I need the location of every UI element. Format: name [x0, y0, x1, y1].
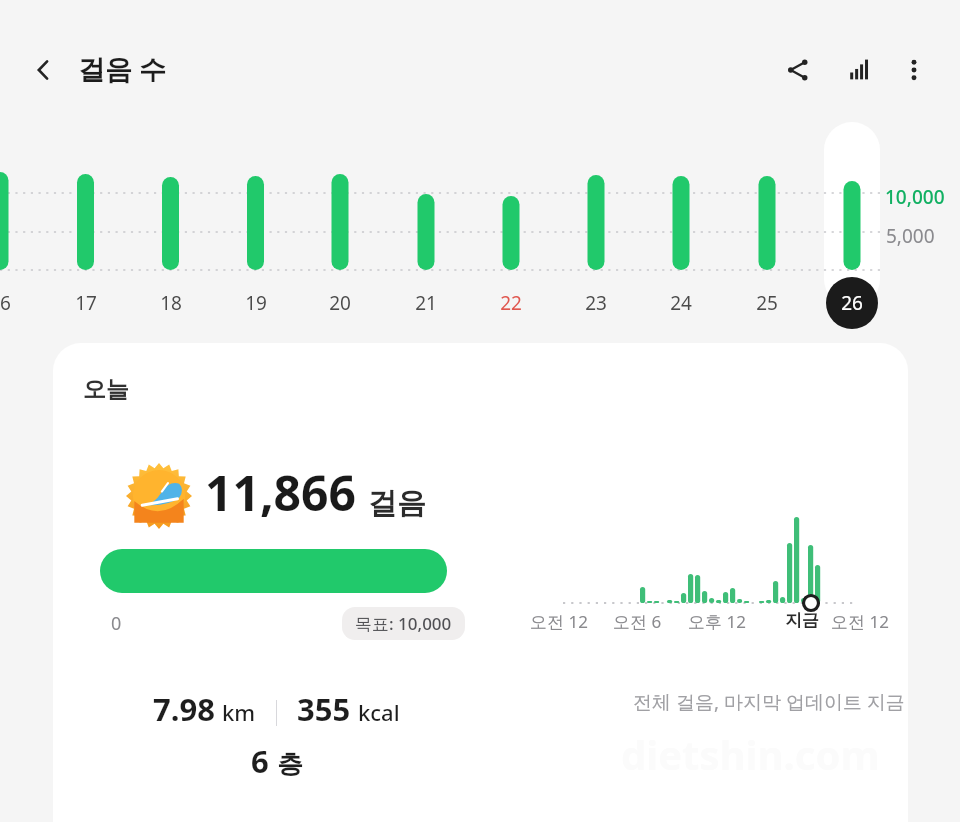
staticText: 21	[415, 290, 437, 316]
staticText: 오후 12	[688, 610, 746, 633]
button[interactable]: 19	[226, 289, 286, 317]
button[interactable]: Chart	[832, 44, 884, 96]
staticText: 오전 12	[530, 610, 588, 633]
button[interactable]: 20	[310, 289, 370, 317]
button[interactable]: 17	[56, 289, 116, 317]
staticText: 오늘	[83, 375, 129, 404]
button[interactable]: 25	[737, 289, 797, 317]
staticText: 걸음	[368, 485, 426, 522]
button[interactable]: 16	[0, 289, 30, 317]
staticText: 오전 12	[831, 610, 889, 633]
staticText: 24	[670, 290, 692, 316]
staticText: 5,000	[886, 223, 935, 249]
button[interactable]: Share	[772, 44, 824, 96]
staticText: 7.98	[153, 688, 215, 730]
staticText: 22	[500, 290, 522, 316]
staticText: 11,866	[205, 460, 356, 525]
button[interactable]: 18	[141, 289, 201, 317]
staticText: 23	[585, 290, 607, 316]
button[interactable]: 오늘	[53, 343, 908, 822]
staticText: 0	[111, 611, 122, 636]
staticText: 6	[251, 740, 269, 782]
staticText: 25	[756, 290, 778, 316]
button[interactable]: More options	[888, 44, 940, 96]
button[interactable]: 24	[651, 289, 711, 317]
staticText: 목표: 10,000	[355, 612, 452, 635]
staticText: 20	[329, 290, 351, 316]
button[interactable]: 22	[481, 289, 541, 317]
button[interactable]	[100, 549, 447, 593]
button[interactable]: 23	[566, 289, 626, 317]
staticText: km	[222, 697, 256, 727]
staticText: 19	[245, 290, 267, 316]
staticText: kcal	[358, 697, 400, 727]
button[interactable]: 26	[822, 289, 882, 317]
staticText: 10,000	[885, 184, 945, 210]
staticText: 지금	[785, 610, 819, 631]
staticText: 오전 6	[613, 610, 662, 633]
button[interactable]: Back	[18, 44, 70, 96]
button[interactable]: 21	[396, 289, 456, 317]
staticText: 층	[277, 748, 303, 781]
staticText: 17	[75, 290, 97, 316]
staticText: 355	[297, 688, 351, 730]
staticText: 16	[0, 290, 11, 316]
staticText: 18	[160, 290, 182, 316]
staticText: 26	[841, 290, 863, 316]
staticText: 전체 걸음, 마지막 업데이트 지금	[633, 689, 905, 715]
staticText: 걸음 수	[78, 50, 167, 87]
